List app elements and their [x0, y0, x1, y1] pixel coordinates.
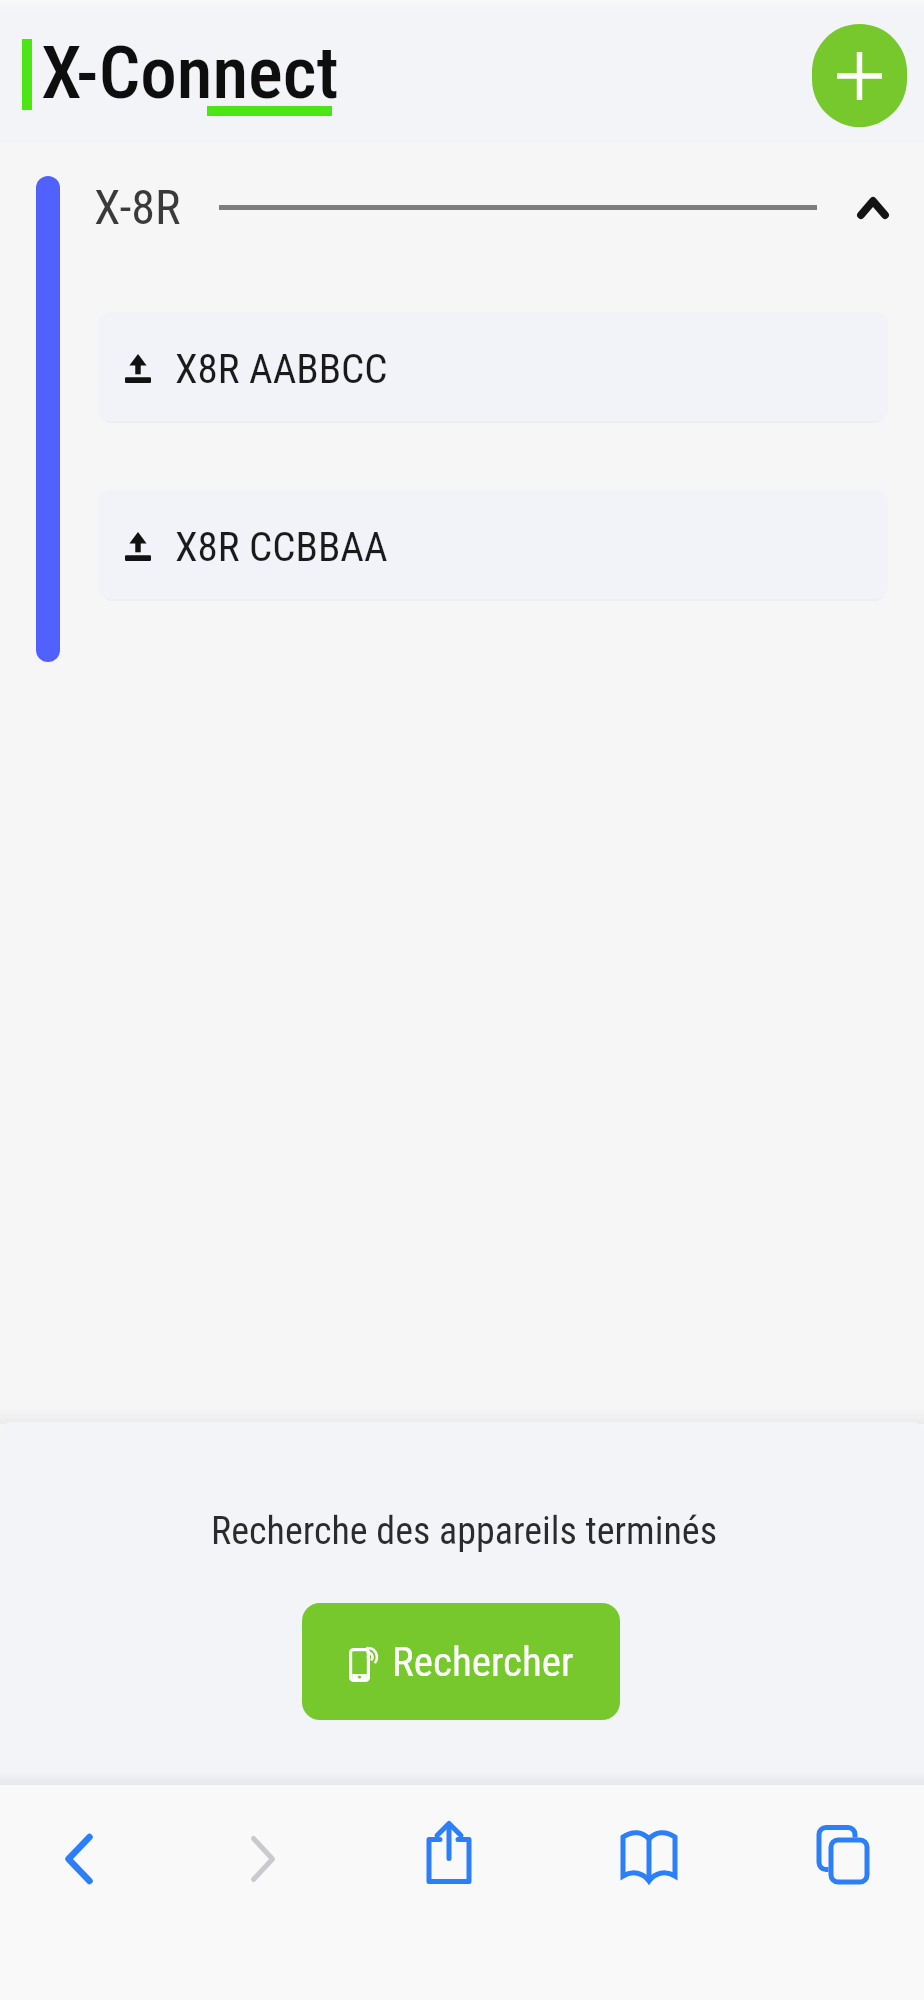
button[interactable]: Back — [21, 1800, 135, 1914]
button[interactable]: Forward — [205, 1800, 319, 1914]
staticText: X-8R — [94, 179, 181, 235]
button[interactable]: Add device — [812, 24, 907, 127]
button[interactable]: Tabs — [785, 1800, 899, 1914]
button[interactable]: Bookmarks — [591, 1800, 705, 1914]
button[interactable]: Share — [391, 1800, 505, 1914]
staticText: X8R AABBCC — [175, 345, 388, 393]
button[interactable]: X8R AABBCC — [98, 312, 888, 421]
staticText: Recherche des appareils terminés — [211, 1509, 718, 1554]
button[interactable]: X8R CCBBAA — [98, 490, 888, 599]
button[interactable]: Rechercher — [302, 1603, 620, 1720]
button[interactable]: X-8R — [60, 172, 924, 250]
staticText: Rechercher — [392, 1638, 574, 1686]
staticText: X-Connect — [41, 30, 339, 116]
staticText: X8R CCBBAA — [175, 523, 388, 571]
